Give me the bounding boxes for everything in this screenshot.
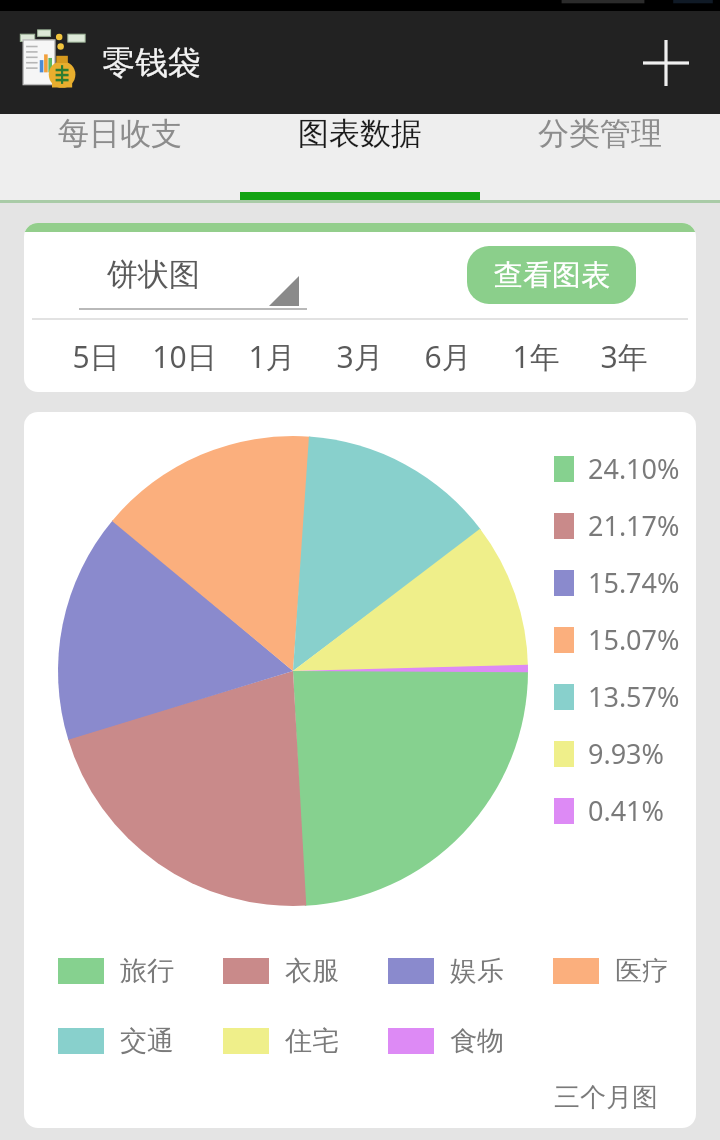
staticText: 娱乐 <box>450 954 504 988</box>
button[interactable]: 饼状图 <box>79 240 307 310</box>
button[interactable]: 15.07% <box>554 611 680 668</box>
button[interactable]: 1年 <box>492 324 580 388</box>
staticText: 医疗 <box>615 954 669 988</box>
button[interactable]: 3年 <box>580 324 668 388</box>
staticText: 15.07% <box>588 621 680 658</box>
staticText: 饼状图 <box>107 255 200 294</box>
staticText: 6月 <box>424 336 472 377</box>
button[interactable]: 图表数据 <box>240 114 480 153</box>
staticText: 分类管理 <box>538 114 662 153</box>
staticText: 交通 <box>120 1024 174 1058</box>
staticText: 住宅 <box>285 1024 339 1058</box>
button[interactable]: 3月 <box>316 324 404 388</box>
staticText: 3年 <box>600 336 648 377</box>
button[interactable]: 食物 <box>388 1011 553 1071</box>
staticText: 24.10% <box>588 450 680 487</box>
button[interactable]: 交通 <box>58 1011 223 1071</box>
button[interactable]: 医疗 <box>553 941 696 1001</box>
button[interactable]: 24.10% <box>554 440 680 497</box>
staticText: 零钱袋 <box>102 42 201 84</box>
button[interactable]: 娱乐 <box>388 941 553 1001</box>
button[interactable]: 查看图表 <box>467 246 636 304</box>
staticText: 衣服 <box>285 954 339 988</box>
staticText: 0.41% <box>588 792 665 829</box>
button[interactable]: 21.17% <box>554 497 680 554</box>
staticText: 3月 <box>336 336 384 377</box>
button[interactable]: 10日 <box>140 324 228 388</box>
button[interactable]: 13.57% <box>554 668 680 725</box>
button[interactable]: 旅行 <box>58 941 223 1001</box>
staticText: 三个月图 <box>554 1081 658 1114</box>
button[interactable]: 0.41% <box>554 782 665 839</box>
staticText: 13.57% <box>588 678 680 715</box>
button[interactable]: 1月 <box>228 324 316 388</box>
button[interactable]: 分类管理 <box>480 114 720 153</box>
staticText: 1月 <box>248 336 296 377</box>
button[interactable]: 衣服 <box>223 941 388 1001</box>
staticText: 图表数据 <box>298 114 422 153</box>
button[interactable]: 5日 <box>52 324 140 388</box>
button[interactable]: 6月 <box>404 324 492 388</box>
button[interactable]: Add <box>634 31 698 95</box>
staticText: 10日 <box>152 336 217 377</box>
staticText: 15.74% <box>588 564 680 601</box>
staticText: 旅行 <box>120 954 174 988</box>
staticText: 5日 <box>72 336 120 377</box>
button[interactable]: 每日收支 <box>0 114 240 153</box>
staticText: 9.93% <box>588 735 665 772</box>
staticText: 每日收支 <box>58 114 182 153</box>
staticText: 查看图表 <box>494 257 610 294</box>
button[interactable]: 15.74% <box>554 554 680 611</box>
staticText: 1年 <box>512 336 560 377</box>
staticText: 食物 <box>450 1024 504 1058</box>
staticText: 21.17% <box>588 507 680 544</box>
button[interactable]: 住宅 <box>223 1011 388 1071</box>
button[interactable]: 9.93% <box>554 725 665 782</box>
